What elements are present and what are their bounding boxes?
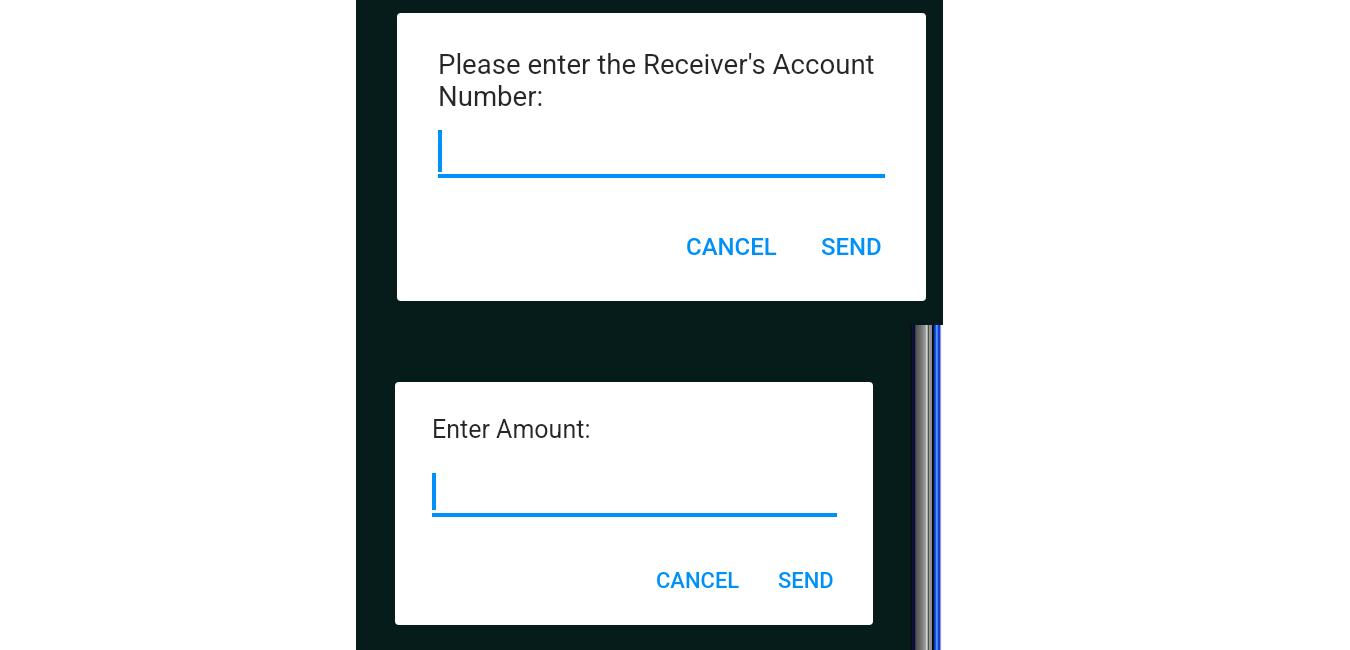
button[interactable]: CANCEL <box>680 225 783 269</box>
staticText: Enter Amount: <box>432 415 591 444</box>
staticText: CANCEL <box>686 233 777 261</box>
button[interactable]: CANCEL <box>650 560 746 602</box>
button[interactable]: Amount input <box>432 467 837 521</box>
button[interactable]: SEND <box>772 560 840 602</box>
staticText: Please enter the Receiver's Account Numb… <box>438 48 890 113</box>
staticText: SEND <box>821 233 882 261</box>
staticText: CANCEL <box>656 568 740 594</box>
button[interactable]: Receiver's account number input <box>438 124 885 182</box>
staticText: SEND <box>778 568 834 594</box>
button[interactable]: SEND <box>815 225 888 269</box>
